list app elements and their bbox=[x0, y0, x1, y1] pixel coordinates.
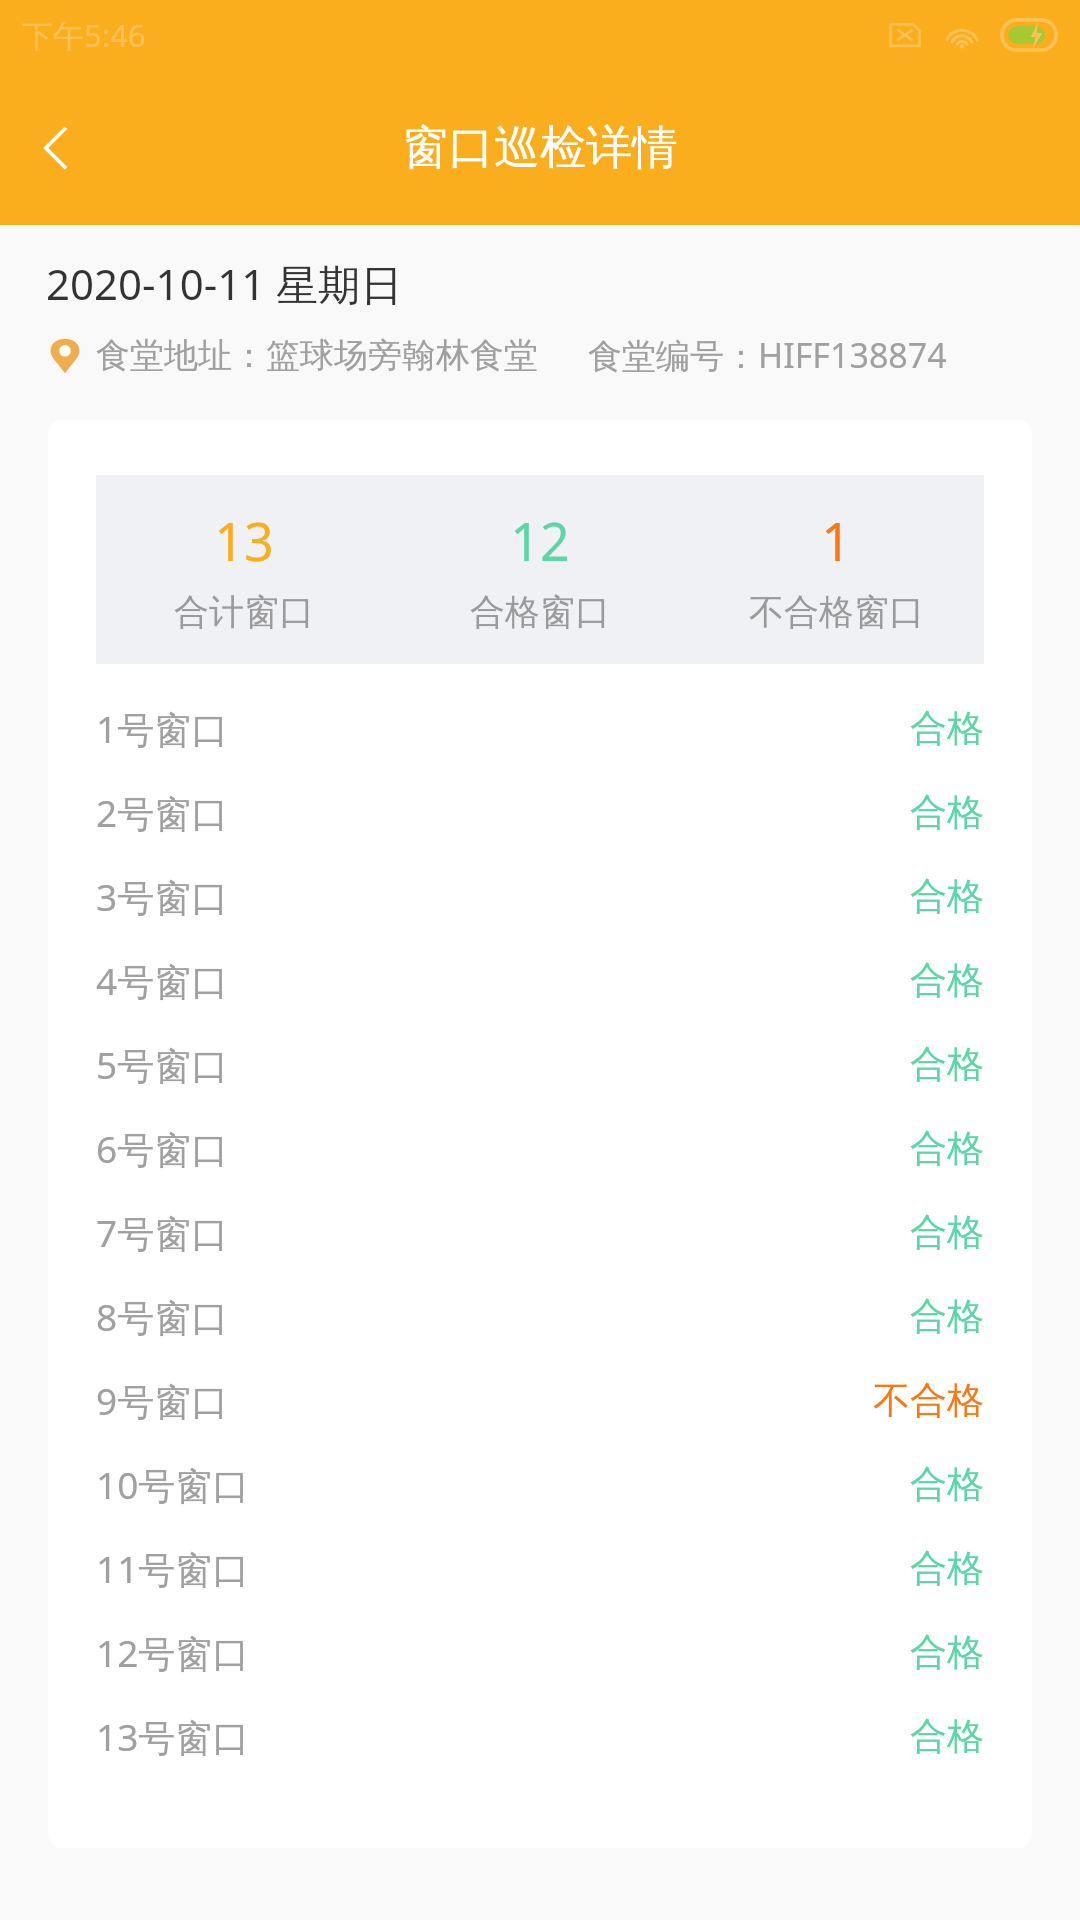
button[interactable]: 2号窗口 bbox=[48, 770, 1032, 854]
staticText: 6号窗口 bbox=[96, 1123, 229, 1174]
button[interactable]: 8号窗口 bbox=[48, 1274, 1032, 1358]
button[interactable]: 10号窗口 bbox=[48, 1442, 1032, 1526]
staticText: 1 bbox=[821, 505, 851, 576]
staticText: 合格 bbox=[910, 705, 984, 752]
staticText: 合格 bbox=[910, 957, 984, 1004]
staticText: 3号窗口 bbox=[96, 871, 229, 922]
staticText: 13号窗口 bbox=[96, 1711, 250, 1762]
staticText: 10号窗口 bbox=[96, 1459, 250, 1510]
staticText: 窗口巡检详情 bbox=[402, 119, 678, 177]
staticText: 5号窗口 bbox=[96, 1039, 229, 1090]
button[interactable]: 3号窗口 bbox=[48, 854, 1032, 938]
staticText: 13 bbox=[214, 505, 274, 576]
button[interactable]: 7号窗口 bbox=[48, 1190, 1032, 1274]
staticText: 合格 bbox=[910, 1713, 984, 1760]
staticText: 不合格窗口 bbox=[749, 590, 924, 634]
button[interactable]: 12号窗口 bbox=[48, 1610, 1032, 1694]
staticText: 合格 bbox=[910, 1125, 984, 1172]
button[interactable]: 12 bbox=[392, 505, 688, 634]
staticText: 9号窗口 bbox=[96, 1375, 229, 1426]
button[interactable]: Back bbox=[22, 112, 94, 184]
staticText: 合格 bbox=[910, 873, 984, 920]
staticText: 11号窗口 bbox=[96, 1543, 250, 1594]
staticText: 下午5:46 bbox=[22, 14, 146, 56]
staticText: 12 bbox=[510, 505, 570, 576]
button[interactable]: 1 bbox=[688, 505, 984, 634]
button[interactable]: 6号窗口 bbox=[48, 1106, 1032, 1190]
staticText: 合格 bbox=[910, 1209, 984, 1256]
button[interactable]: 4号窗口 bbox=[48, 938, 1032, 1022]
staticText: 2号窗口 bbox=[96, 787, 229, 838]
staticText: 食堂地址：篮球场旁翰林食堂 bbox=[96, 334, 538, 377]
staticText: 合格 bbox=[910, 1629, 984, 1676]
staticText: 合格窗口 bbox=[470, 590, 610, 634]
button[interactable]: 1号窗口 bbox=[48, 686, 1032, 770]
staticText: 食堂编号：HIFF138874 bbox=[588, 332, 947, 378]
staticText: 合计窗口 bbox=[174, 590, 314, 634]
staticText: 合格 bbox=[910, 1545, 984, 1592]
staticText: 7号窗口 bbox=[96, 1207, 229, 1258]
staticText: 合格 bbox=[910, 789, 984, 836]
staticText: 合格 bbox=[910, 1041, 984, 1088]
staticText: 2020-10-11 星期日 bbox=[46, 255, 403, 312]
staticText: 1号窗口 bbox=[96, 703, 229, 754]
staticText: 不合格 bbox=[873, 1377, 984, 1424]
button[interactable]: 9号窗口 bbox=[48, 1358, 1032, 1442]
staticText: 4号窗口 bbox=[96, 955, 229, 1006]
button[interactable]: 5号窗口 bbox=[48, 1022, 1032, 1106]
staticText: 合格 bbox=[910, 1293, 984, 1340]
staticText: 合格 bbox=[910, 1461, 984, 1508]
staticText: 12号窗口 bbox=[96, 1627, 250, 1678]
button[interactable]: 13号窗口 bbox=[48, 1694, 1032, 1778]
button[interactable]: 11号窗口 bbox=[48, 1526, 1032, 1610]
staticText: 8号窗口 bbox=[96, 1291, 229, 1342]
button[interactable]: 13 bbox=[96, 505, 392, 634]
